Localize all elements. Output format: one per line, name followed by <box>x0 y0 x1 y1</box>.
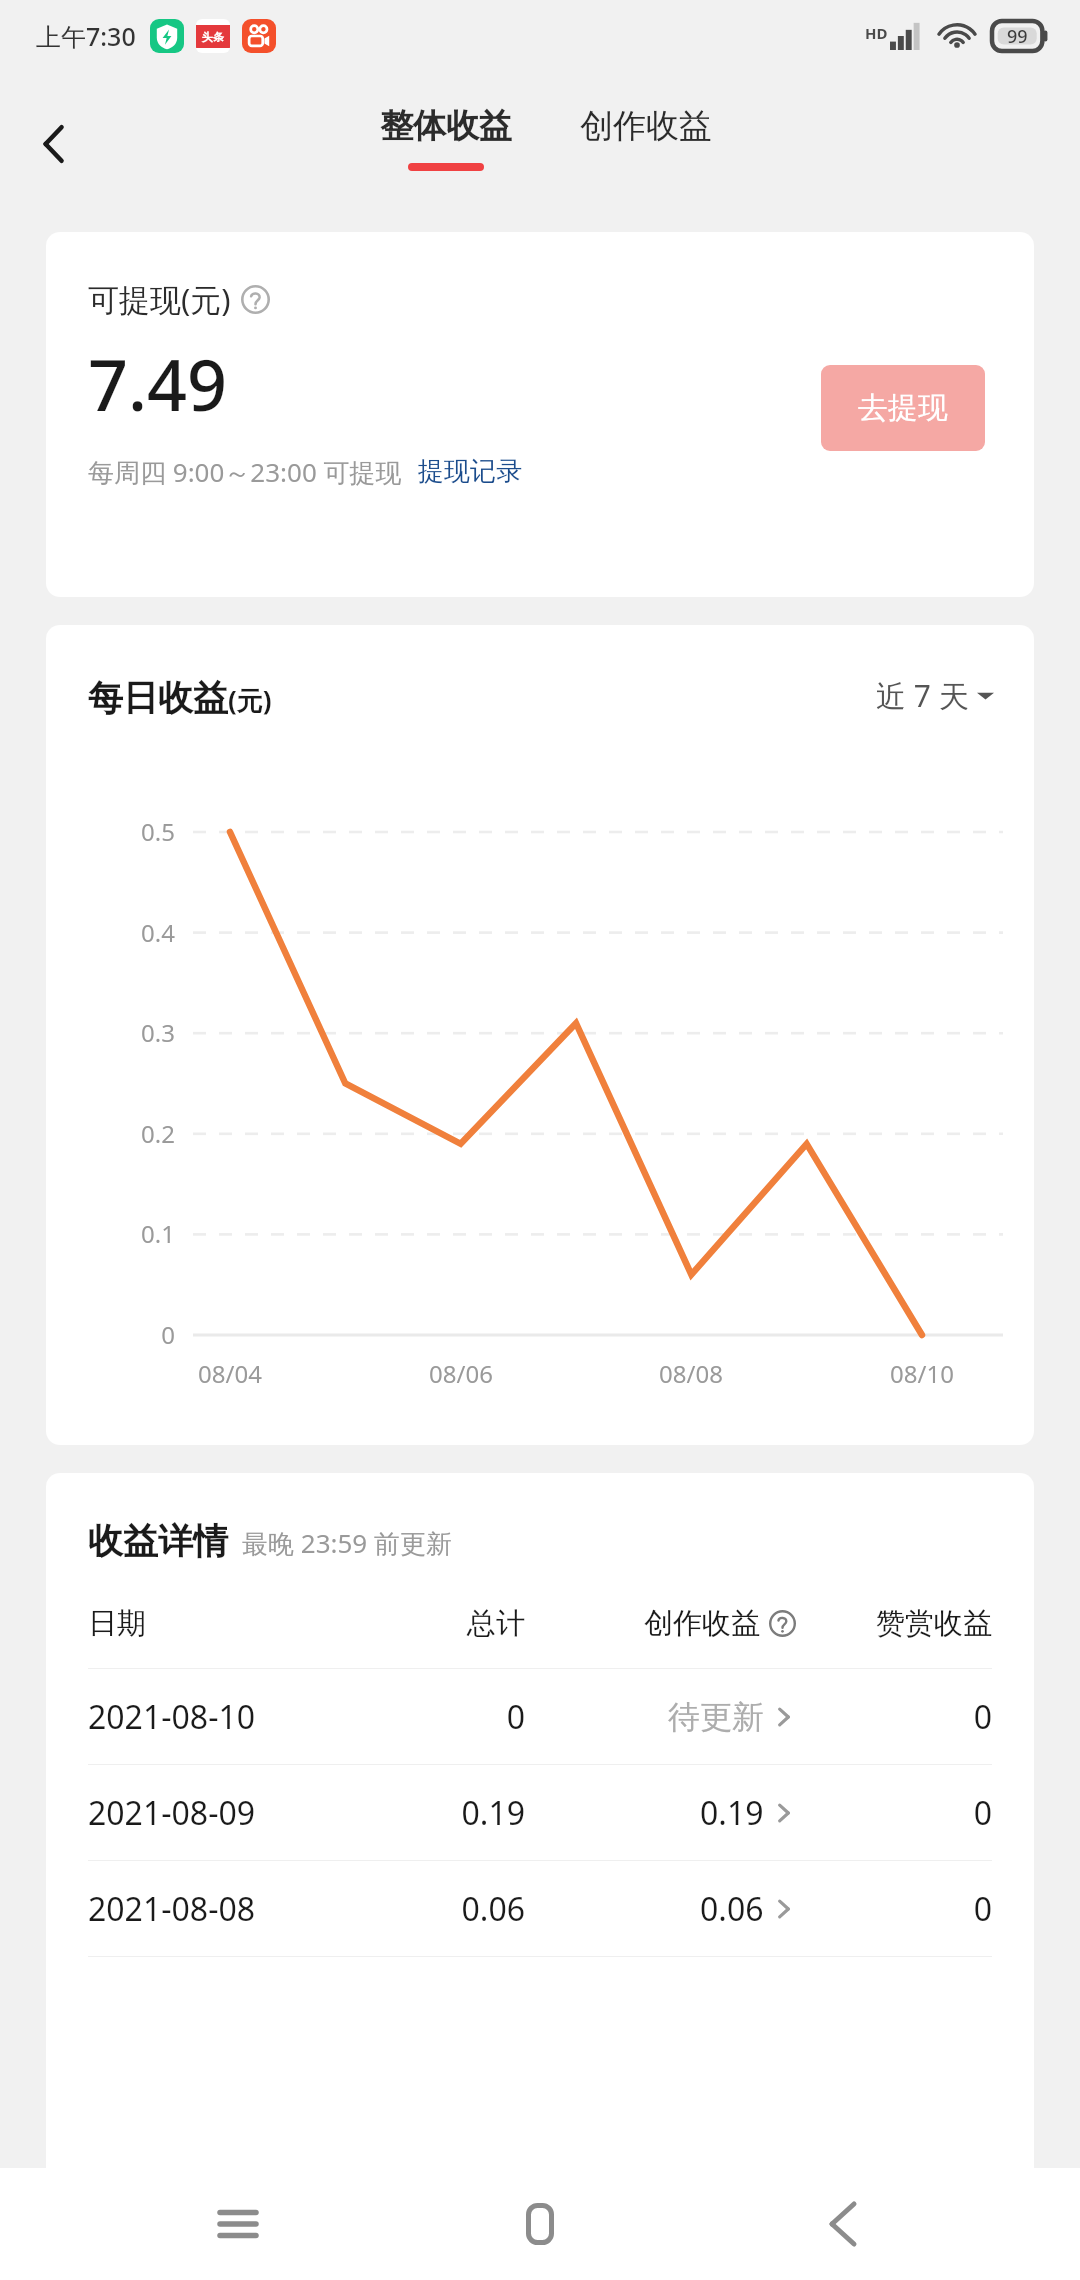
staticText: 提现记录 <box>418 455 522 488</box>
button[interactable]: 去提现 <box>821 365 985 451</box>
button[interactable]: 返回 <box>778 2168 908 2280</box>
staticText: 去提现 <box>858 389 948 427</box>
staticText: 总计 <box>350 1605 525 1642</box>
staticText: 每周四 9:00～23:00 可提现 <box>88 454 402 490</box>
staticText: 每日收益 <box>88 676 228 720</box>
staticText: 待更新 <box>668 1697 764 1737</box>
button[interactable]: 最近任务 <box>173 2168 303 2280</box>
button[interactable]: 主屏幕 <box>475 2168 605 2280</box>
staticText: 0.06 <box>700 1887 764 1931</box>
staticText: 99 <box>1007 24 1028 49</box>
staticText: 收益详情 <box>88 1519 228 1563</box>
staticText: 日期 <box>88 1605 146 1642</box>
staticText: 整体收益 <box>380 105 512 147</box>
staticText: 0.2 <box>46 1117 175 1150</box>
staticText: 08/04 <box>170 1357 290 1390</box>
button[interactable]: 2021-08-10 <box>46 1669 1034 1764</box>
staticText: 可提现(元) <box>88 278 231 320</box>
staticText: 0.19 <box>350 1791 525 1835</box>
button[interactable]: 返回 <box>16 106 92 182</box>
staticText: 头条 <box>202 30 224 44</box>
staticText: 0.19 <box>700 1791 764 1835</box>
staticText: 0 <box>796 1887 992 1931</box>
button[interactable]: 整体收益 <box>372 99 520 177</box>
staticText: 0 <box>796 1695 992 1739</box>
staticText: 0.5 <box>46 815 175 848</box>
staticText: 0 <box>46 1318 175 1351</box>
staticText: 最晚 23:59 前更新 <box>242 1525 452 1561</box>
button[interactable]: 提现记录 <box>418 451 522 492</box>
staticText: 0 <box>350 1695 525 1739</box>
button[interactable]: 2021-08-08 <box>46 1861 1034 1956</box>
staticText: HD <box>865 23 888 43</box>
staticText: 0.4 <box>46 916 175 949</box>
staticText: 7.49 <box>88 336 228 431</box>
staticText: 2021-08-08 <box>88 1887 256 1931</box>
staticText: 08/08 <box>631 1357 751 1390</box>
staticText: 2021-08-10 <box>88 1695 256 1739</box>
button[interactable]: 创作收益 <box>572 99 720 177</box>
staticText: 0.1 <box>46 1217 175 1250</box>
staticText: 赞赏收益 <box>796 1605 992 1642</box>
staticText: (元) <box>228 682 272 718</box>
staticText: 0.06 <box>350 1887 525 1931</box>
staticText: 0 <box>796 1791 992 1835</box>
staticText: 0.3 <box>46 1016 175 1049</box>
staticText: 08/10 <box>862 1357 982 1390</box>
button[interactable]: 创作收益说明 <box>769 1610 796 1637</box>
staticText: 创作收益 <box>644 1605 760 1642</box>
staticText: 上午7:30 <box>36 19 136 53</box>
staticText: 创作收益 <box>580 105 712 147</box>
button[interactable]: 可提现说明 <box>241 285 270 314</box>
staticText: 近 7 天 <box>876 675 969 716</box>
button[interactable]: 2021-08-09 <box>46 1765 1034 1860</box>
staticText: 2021-08-09 <box>88 1791 256 1835</box>
staticText: 08/06 <box>401 1357 521 1390</box>
button[interactable]: 近 7 天 <box>872 671 998 720</box>
